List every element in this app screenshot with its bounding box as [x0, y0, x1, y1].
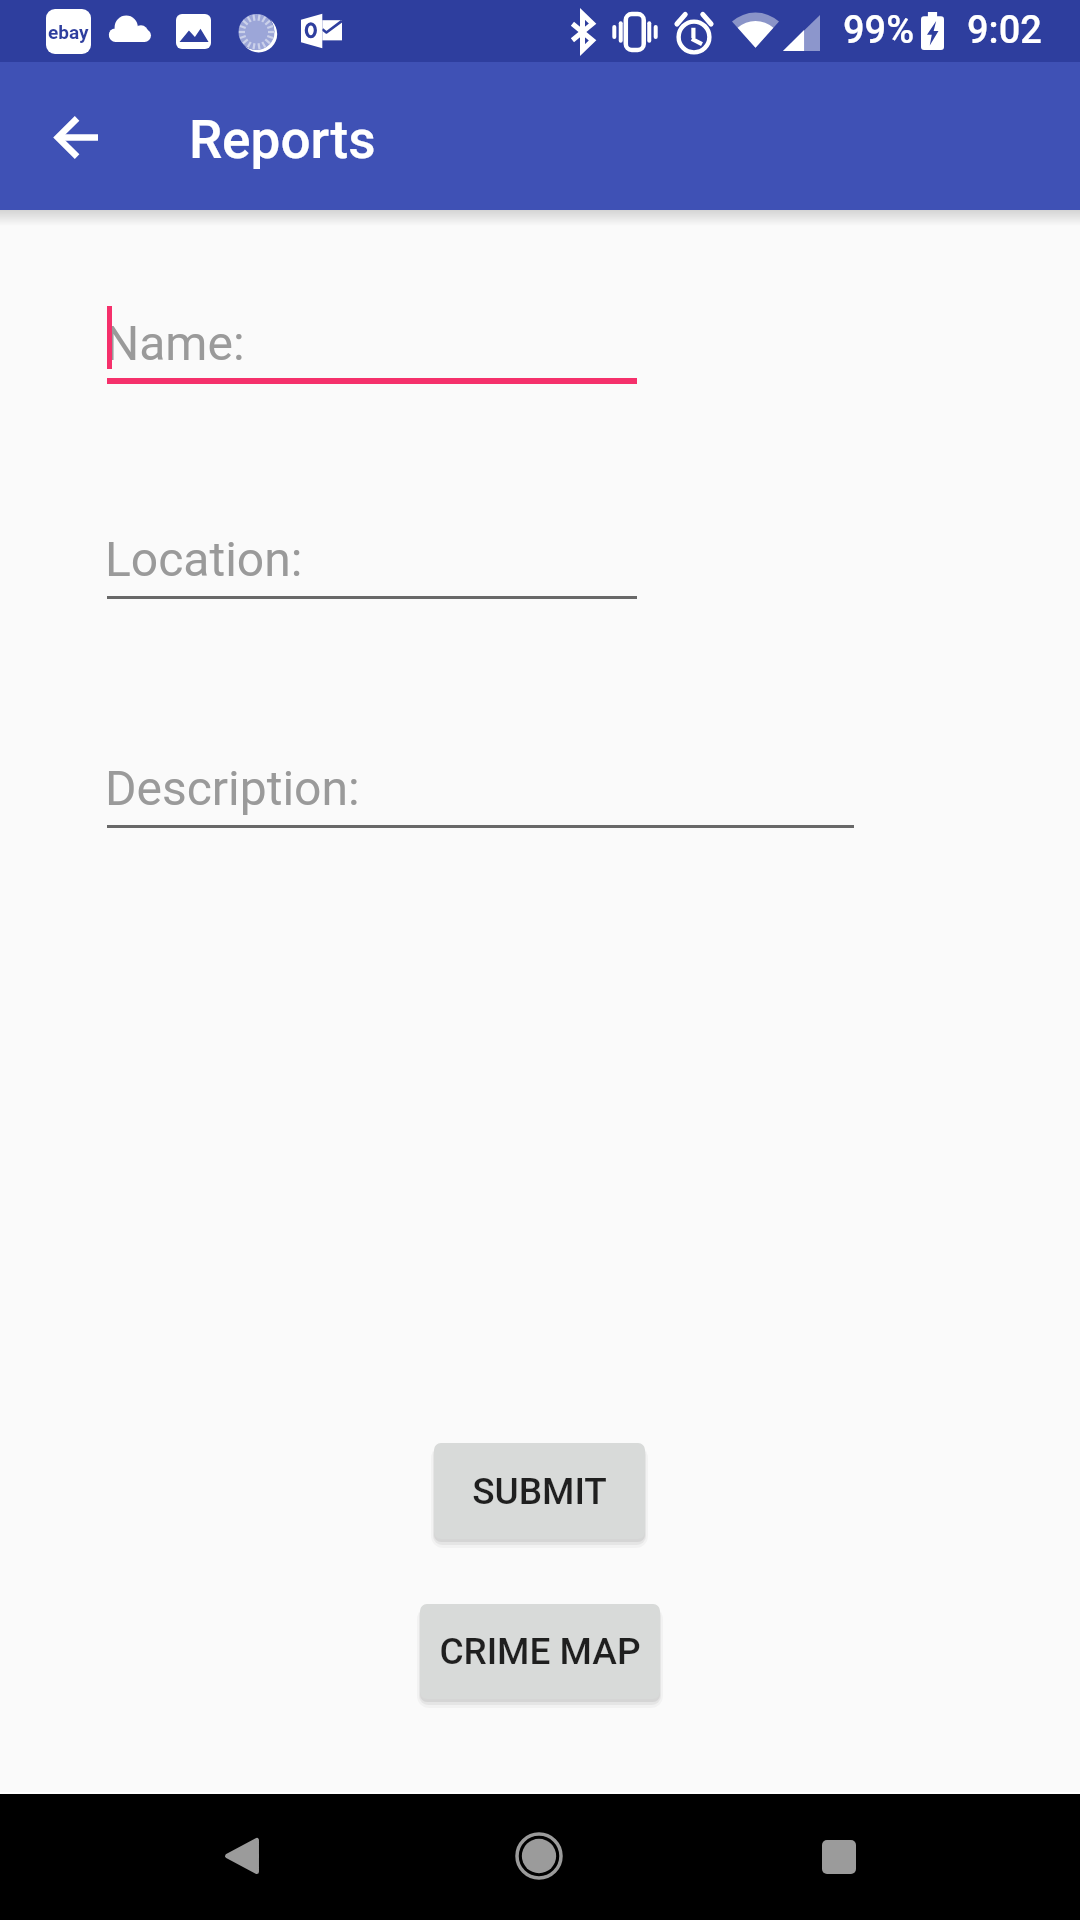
button[interactable]: Name:: [107, 296, 637, 384]
staticText: 99%: [843, 8, 915, 53]
button[interactable]: CRIME MAP: [420, 1604, 660, 1699]
staticText: Description:: [105, 760, 360, 816]
button[interactable]: Home: [494, 1811, 584, 1901]
button[interactable]: SUBMIT: [434, 1443, 645, 1539]
staticText: ebay: [48, 21, 89, 43]
button[interactable]: Recent apps: [794, 1812, 884, 1902]
staticText: CRIME MAP: [439, 1630, 641, 1673]
button[interactable]: Navigate up: [45, 105, 109, 169]
button[interactable]: Location:: [107, 512, 637, 600]
button[interactable]: Description:: [107, 741, 854, 829]
staticText: SUBMIT: [472, 1470, 607, 1513]
staticText: 9:02: [967, 8, 1042, 53]
staticText: Reports: [189, 109, 376, 171]
button[interactable]: Back: [197, 1811, 287, 1901]
staticText: Location:: [105, 531, 303, 587]
staticText: Name:: [105, 315, 245, 371]
